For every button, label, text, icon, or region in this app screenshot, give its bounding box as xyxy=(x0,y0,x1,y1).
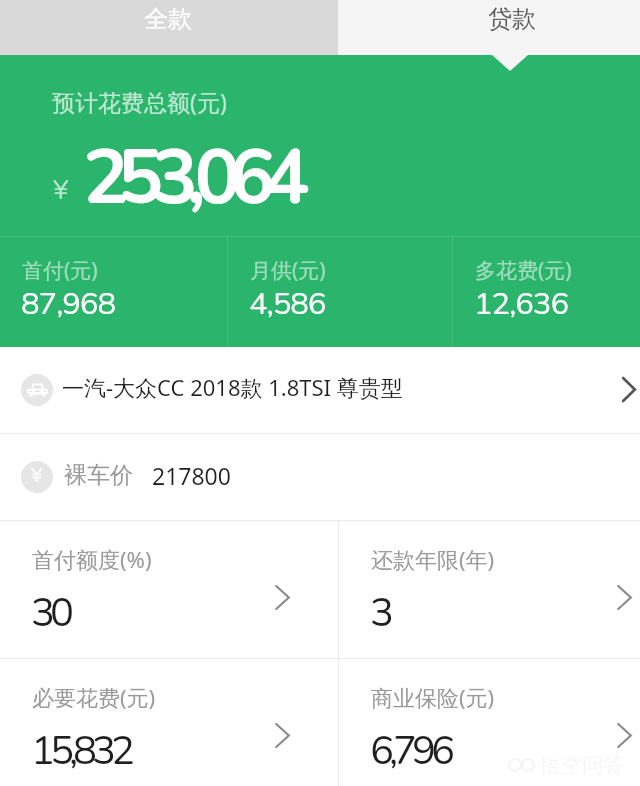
staticText: 还款年限(年) xyxy=(371,544,495,574)
staticText: 必要花费(元) xyxy=(32,682,156,712)
staticText: 商业保险(元) xyxy=(371,682,495,712)
button[interactable]: 全款 xyxy=(0,0,338,55)
staticText: 30 xyxy=(31,586,69,641)
button[interactable]: 必要花费(元) xyxy=(0,659,338,786)
staticText: 87,968 xyxy=(21,283,116,325)
staticText: 悟空问答 xyxy=(540,752,624,778)
button[interactable]: 一汽-大众CC 2018款 1.8TSI 尊贵型 xyxy=(0,347,640,433)
other: 修改 xyxy=(275,585,290,610)
staticText: 首付(元) xyxy=(22,256,98,285)
button[interactable]: 商业保险(元) xyxy=(339,659,640,786)
staticText: 裸车价 xyxy=(64,461,133,490)
button[interactable]: 首付额度(%) xyxy=(0,521,338,658)
staticText: 多花费(元) xyxy=(475,256,572,285)
staticText: 217800 xyxy=(152,460,231,491)
button[interactable]: 多花费(元) xyxy=(453,236,640,347)
button[interactable]: ¥ xyxy=(0,434,640,520)
other: 修改 xyxy=(617,585,632,610)
staticText: 3 xyxy=(370,586,389,641)
staticText: 月供(元) xyxy=(250,256,326,285)
staticText: 一汽-大众CC 2018款 1.8TSI 尊贵型 xyxy=(62,372,403,402)
button[interactable]: 首付(元) xyxy=(0,236,227,347)
other: 选择车型 xyxy=(622,377,636,402)
staticText: 首付额度(%) xyxy=(32,544,152,574)
staticText: 贷款 xyxy=(488,4,536,34)
other: 修改 xyxy=(617,723,632,748)
button[interactable]: 月供(元) xyxy=(228,236,452,347)
button[interactable]: 贷款 xyxy=(338,0,640,55)
staticText: 6,796 xyxy=(370,724,451,779)
staticText: 12,636 xyxy=(474,283,569,325)
button[interactable]: 还款年限(年) xyxy=(339,521,640,658)
staticText: 预计花费总额(元) xyxy=(52,86,227,117)
staticText: 15,832 xyxy=(31,724,131,779)
staticText: ¥ xyxy=(53,173,69,208)
other: 修改 xyxy=(275,723,290,748)
staticText: 全款 xyxy=(144,4,192,34)
staticText: 4,586 xyxy=(249,283,326,325)
staticText: 253,064 xyxy=(83,126,299,230)
staticText: ¥ xyxy=(31,463,43,489)
